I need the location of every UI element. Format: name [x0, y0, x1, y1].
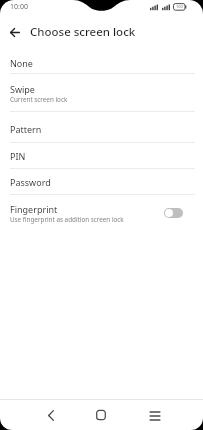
button[interactable]: Swipe [0, 74, 203, 111]
staticText: Swipe [10, 83, 35, 95]
button[interactable]: Pattern [0, 112, 203, 142]
button[interactable] [41, 405, 61, 425]
staticText: 100 [176, 4, 183, 9]
button[interactable] [164, 208, 183, 218]
staticText: Fingerprint [10, 203, 58, 215]
button[interactable] [91, 405, 111, 425]
staticText: PIN [10, 150, 26, 162]
button[interactable] [145, 406, 165, 426]
staticText: Choose screen lock [30, 24, 136, 40]
staticText: Use fingerprint as addition screen lock [10, 215, 124, 224]
button[interactable] [5, 22, 25, 42]
button[interactable]: Password [0, 169, 203, 194]
staticText: Pattern [10, 123, 42, 135]
button[interactable]: PIN [0, 143, 203, 168]
button[interactable]: Fingerprint [0, 195, 203, 231]
staticText: Current screen lock [10, 95, 68, 104]
button[interactable]: None [0, 50, 203, 73]
staticText: 10:00 [10, 2, 28, 12]
staticText: None [10, 57, 33, 69]
staticText: Password [10, 176, 51, 188]
